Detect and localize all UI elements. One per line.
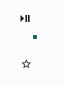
button[interactable]: Favorite	[22, 60, 31, 68]
button[interactable]: Play or pause	[20, 15, 30, 22]
